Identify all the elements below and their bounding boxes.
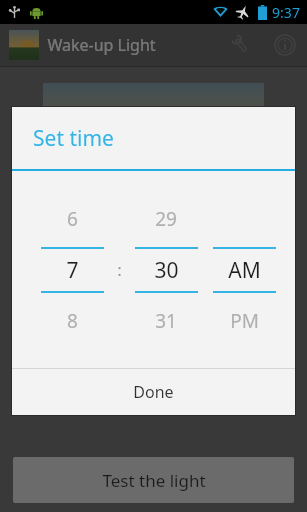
button[interactable]: About — [263, 24, 307, 66]
staticText: PM — [230, 308, 259, 334]
button[interactable]: Done — [12, 369, 295, 415]
staticText: Test the light — [102, 469, 206, 492]
button[interactable]: Test the light — [13, 457, 294, 503]
button[interactable]: 6 — [36, 197, 108, 343]
staticText: AM — [228, 256, 261, 285]
staticText: Set time — [33, 124, 114, 153]
staticText: : — [117, 258, 122, 281]
staticText: 31 — [155, 308, 177, 334]
button[interactable]: AM — [208, 197, 280, 343]
staticText: 29 — [155, 206, 177, 232]
staticText: 9:37 — [272, 3, 300, 22]
button[interactable]: 29 — [130, 197, 202, 343]
staticText: 7 — [66, 256, 79, 285]
staticText: 8 — [67, 308, 78, 334]
staticText: 6 — [67, 206, 78, 232]
staticText: Done — [133, 381, 174, 403]
staticText: 30 — [154, 256, 179, 285]
staticText: Wake-up Light — [47, 34, 156, 56]
